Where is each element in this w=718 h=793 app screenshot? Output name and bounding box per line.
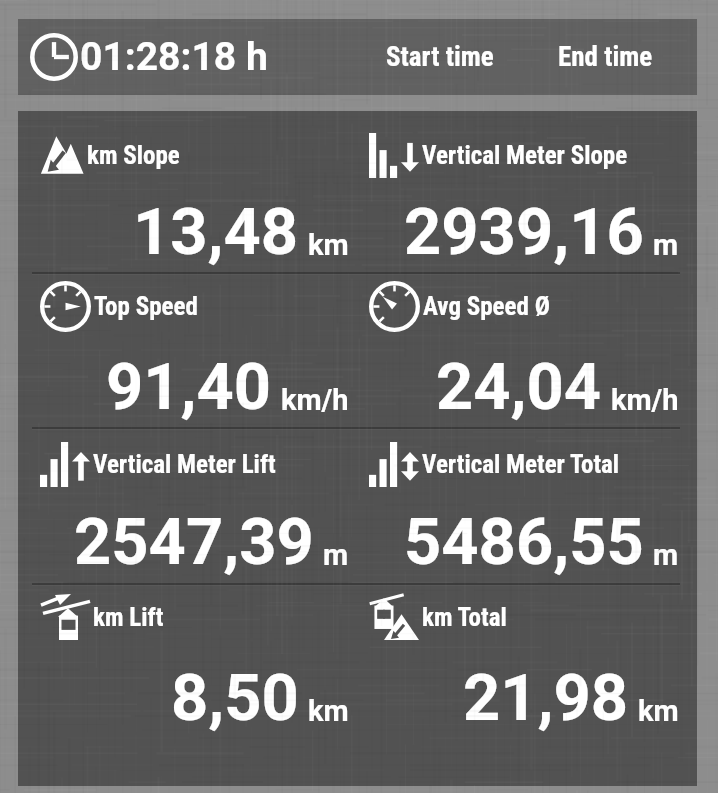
staticText: Top Speed	[94, 292, 198, 321]
button[interactable]: km Lift	[20, 586, 349, 739]
staticText: 01:28:18 h	[80, 34, 268, 80]
staticText: m	[323, 538, 349, 572]
staticText: End time	[558, 41, 653, 73]
staticText: 2547,39	[74, 504, 314, 580]
staticText: 13,48	[133, 194, 299, 270]
staticText: Vertical Meter Slope	[422, 141, 628, 170]
staticText: km Slope	[87, 141, 180, 170]
staticText: Vertical Meter Total	[422, 450, 620, 479]
staticText: 2939,16	[404, 194, 644, 270]
staticText: 5486,55	[404, 504, 644, 580]
staticText: km Total	[422, 603, 507, 632]
staticText: km Lift	[93, 603, 164, 632]
staticText: km/h	[281, 383, 349, 417]
button[interactable]: Vertical Meter Lift	[20, 430, 349, 583]
other: Duration	[30, 33, 78, 81]
staticText: 8,50	[171, 660, 299, 736]
staticText: 21,98	[463, 660, 629, 736]
staticText: km	[638, 694, 679, 728]
button[interactable]: Avg Speed Ø	[349, 275, 679, 427]
staticText: Avg Speed Ø	[423, 292, 550, 321]
button[interactable]: Start time	[374, 19, 506, 95]
button[interactable]: km Total	[349, 586, 679, 739]
staticText: km/h	[611, 383, 679, 417]
button[interactable]: Top Speed	[20, 275, 349, 427]
staticText: Start time	[386, 41, 494, 73]
staticText: m	[653, 228, 679, 262]
staticText: 91,40	[106, 349, 272, 425]
staticText: m	[653, 538, 679, 572]
staticText: 24,04	[436, 349, 602, 425]
button[interactable]: Vertical Meter Total	[349, 430, 679, 583]
staticText: Vertical Meter Lift	[93, 450, 276, 479]
button[interactable]: Vertical Meter Slope	[349, 111, 679, 272]
button[interactable]: km Slope	[20, 111, 349, 272]
button[interactable]: End time	[546, 19, 665, 95]
staticText: km	[308, 694, 349, 728]
staticText: km	[308, 228, 349, 262]
